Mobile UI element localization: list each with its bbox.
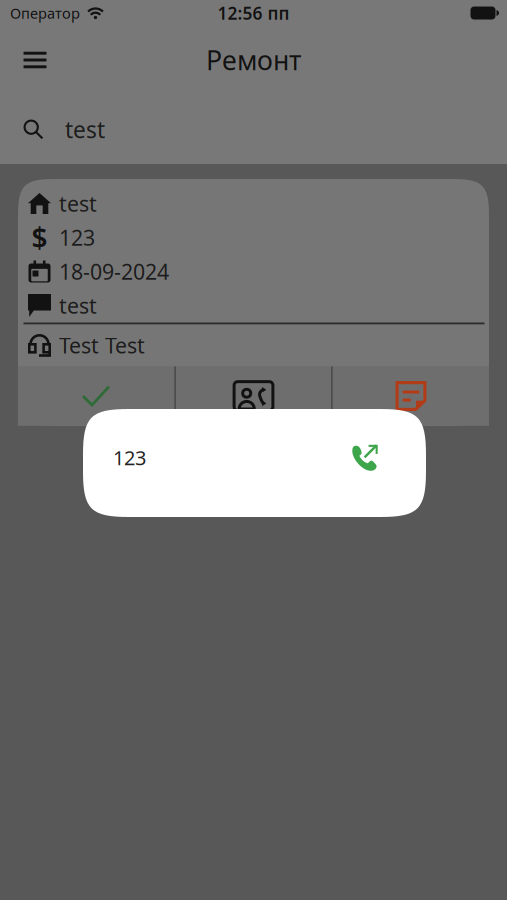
- button[interactable]: Menu: [12, 37, 58, 83]
- staticText: Ремонт: [206, 42, 301, 78]
- staticText: 123: [113, 444, 146, 471]
- staticText: Test Test: [59, 331, 145, 359]
- staticText: test: [59, 291, 97, 320]
- button[interactable]: test: [18, 179, 489, 366]
- button[interactable]: Call contact: [176, 366, 331, 426]
- button[interactable]: Call 123: [83, 409, 426, 517]
- button[interactable]: Notes: [332, 366, 489, 426]
- staticText: 12:56 пп: [217, 1, 289, 24]
- staticText: 123: [59, 223, 95, 252]
- staticText: 18-09-2024: [59, 257, 169, 286]
- staticText: test: [59, 189, 97, 218]
- staticText: Оператор: [10, 3, 80, 23]
- staticText: $: [31, 219, 47, 256]
- staticText: test: [65, 114, 105, 144]
- button[interactable]: Complete: [17, 366, 174, 426]
- button[interactable]: Search: [0, 91, 507, 164]
